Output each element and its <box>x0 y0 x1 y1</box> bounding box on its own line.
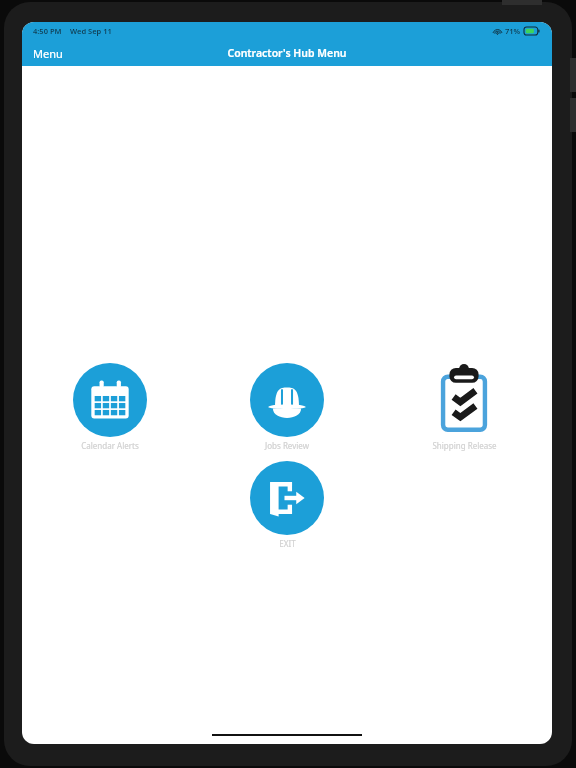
staticText: EXIT <box>279 538 296 549</box>
button[interactable]: EXIT <box>232 461 342 549</box>
staticText: Wed Sep 11 <box>70 26 112 36</box>
staticText: 71% <box>505 26 521 36</box>
button[interactable]: Shipping Release <box>409 363 519 451</box>
button[interactable]: Menu <box>22 40 74 66</box>
staticText: Contractor's Hub Menu <box>227 46 347 60</box>
staticText: Jobs Review <box>265 440 309 451</box>
staticText: Menu <box>33 46 63 61</box>
staticText: Calendar Alerts <box>81 440 139 451</box>
staticText: 4:50 PM <box>33 26 62 36</box>
button[interactable]: Calendar Alerts <box>55 363 165 451</box>
button[interactable]: Jobs Review <box>232 363 342 451</box>
staticText: Shipping Release <box>432 440 497 451</box>
